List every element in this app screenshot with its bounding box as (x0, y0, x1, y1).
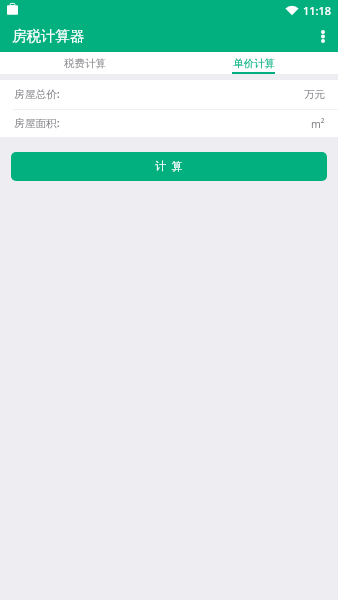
staticText: 房屋面积: (14, 116, 60, 131)
button[interactable]: 房屋面积: (0, 110, 338, 137)
button[interactable]: More options (307, 21, 338, 52)
button[interactable]: 税费计算 (0, 52, 169, 74)
staticText: 万元 (304, 88, 325, 101)
button[interactable]: 单价计算 (169, 52, 338, 74)
staticText: 11:18 (303, 3, 332, 18)
staticText: 房屋总价: (14, 87, 60, 102)
button[interactable]: 计 算 (11, 152, 327, 181)
button[interactable]: 房屋总价: (0, 80, 338, 109)
staticText: 税费计算 (64, 57, 106, 70)
staticText: 房税计算器 (12, 27, 85, 45)
staticText: 单价计算 (233, 57, 275, 70)
staticText: m² (311, 117, 325, 131)
staticText: 计 算 (155, 158, 183, 173)
